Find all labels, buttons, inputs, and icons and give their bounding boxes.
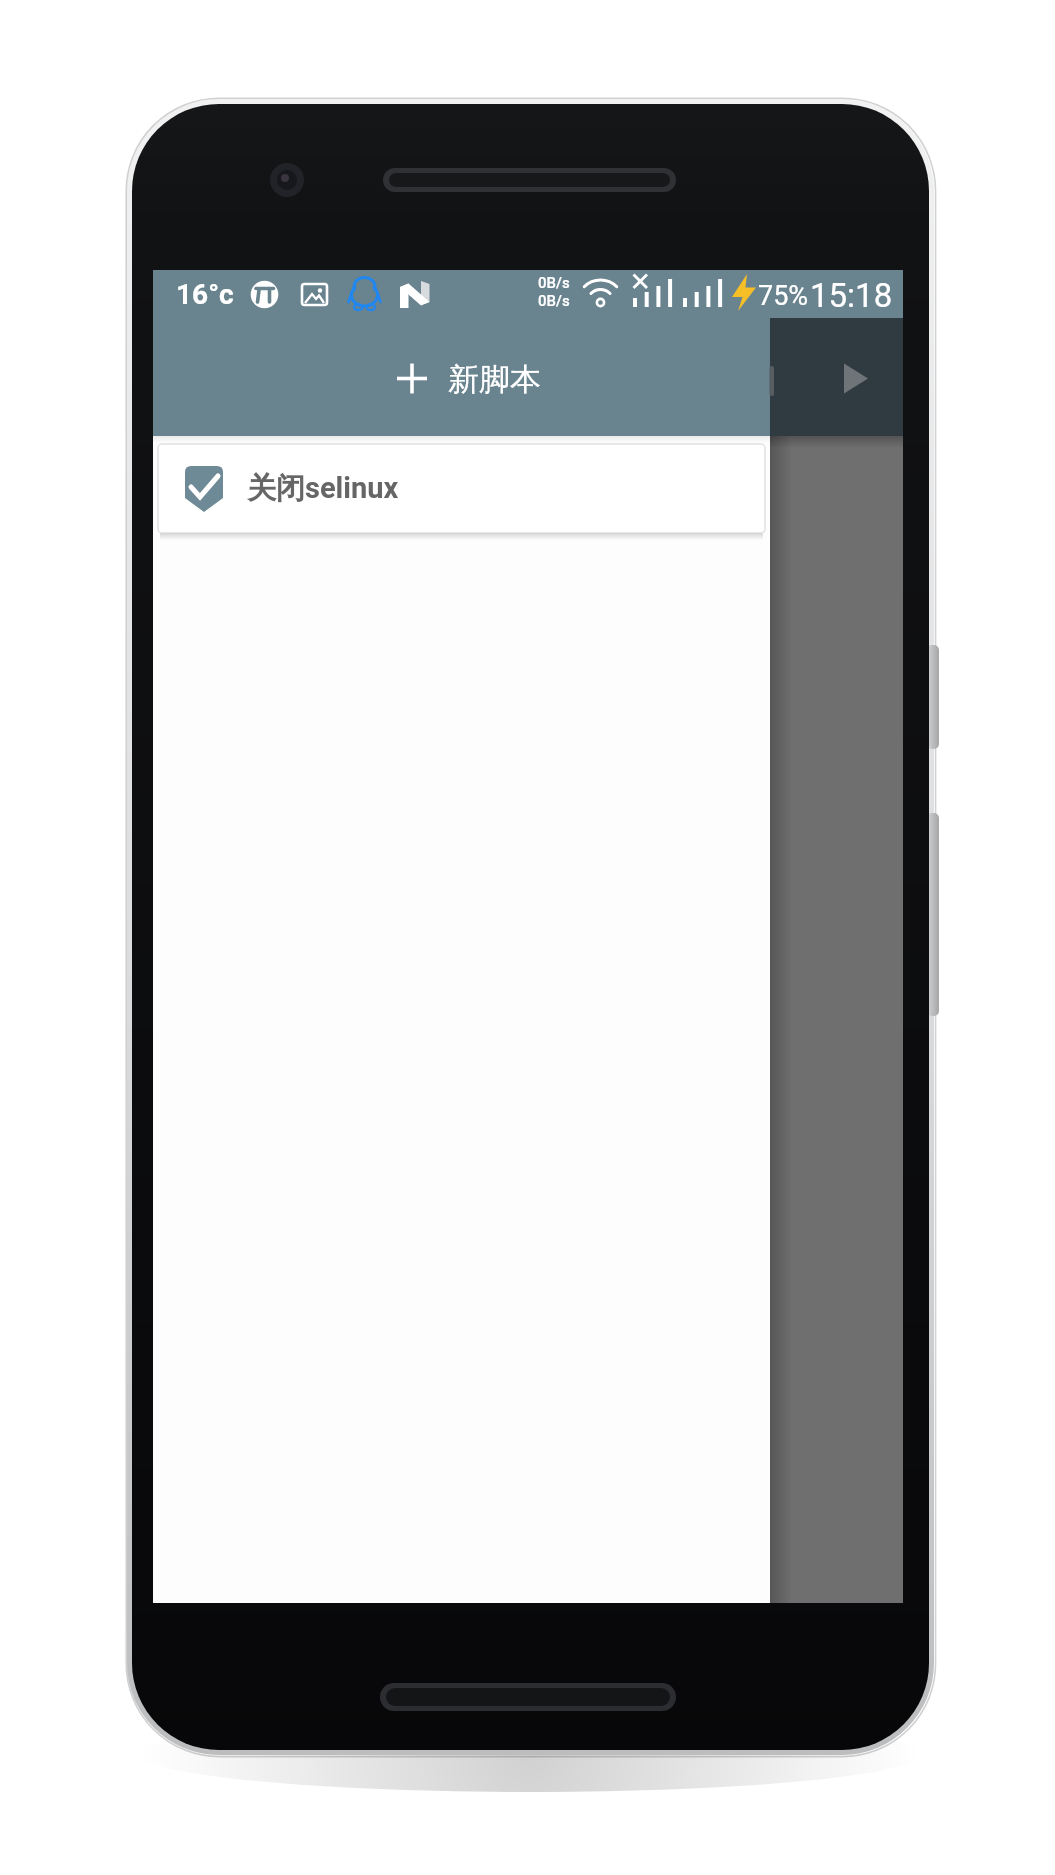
staticText: 16°c xyxy=(176,278,234,311)
staticText: 15:18 xyxy=(810,276,893,315)
button[interactable] xyxy=(832,354,880,402)
staticText: 75% xyxy=(758,280,809,312)
staticText: 关闭selinux xyxy=(247,470,399,507)
button[interactable]: 关闭selinux xyxy=(158,444,765,533)
staticText: 0B/s xyxy=(538,292,570,310)
button[interactable] xyxy=(153,318,770,436)
staticText: 新脚本 xyxy=(448,360,541,399)
staticText: 0B/s xyxy=(538,274,570,292)
